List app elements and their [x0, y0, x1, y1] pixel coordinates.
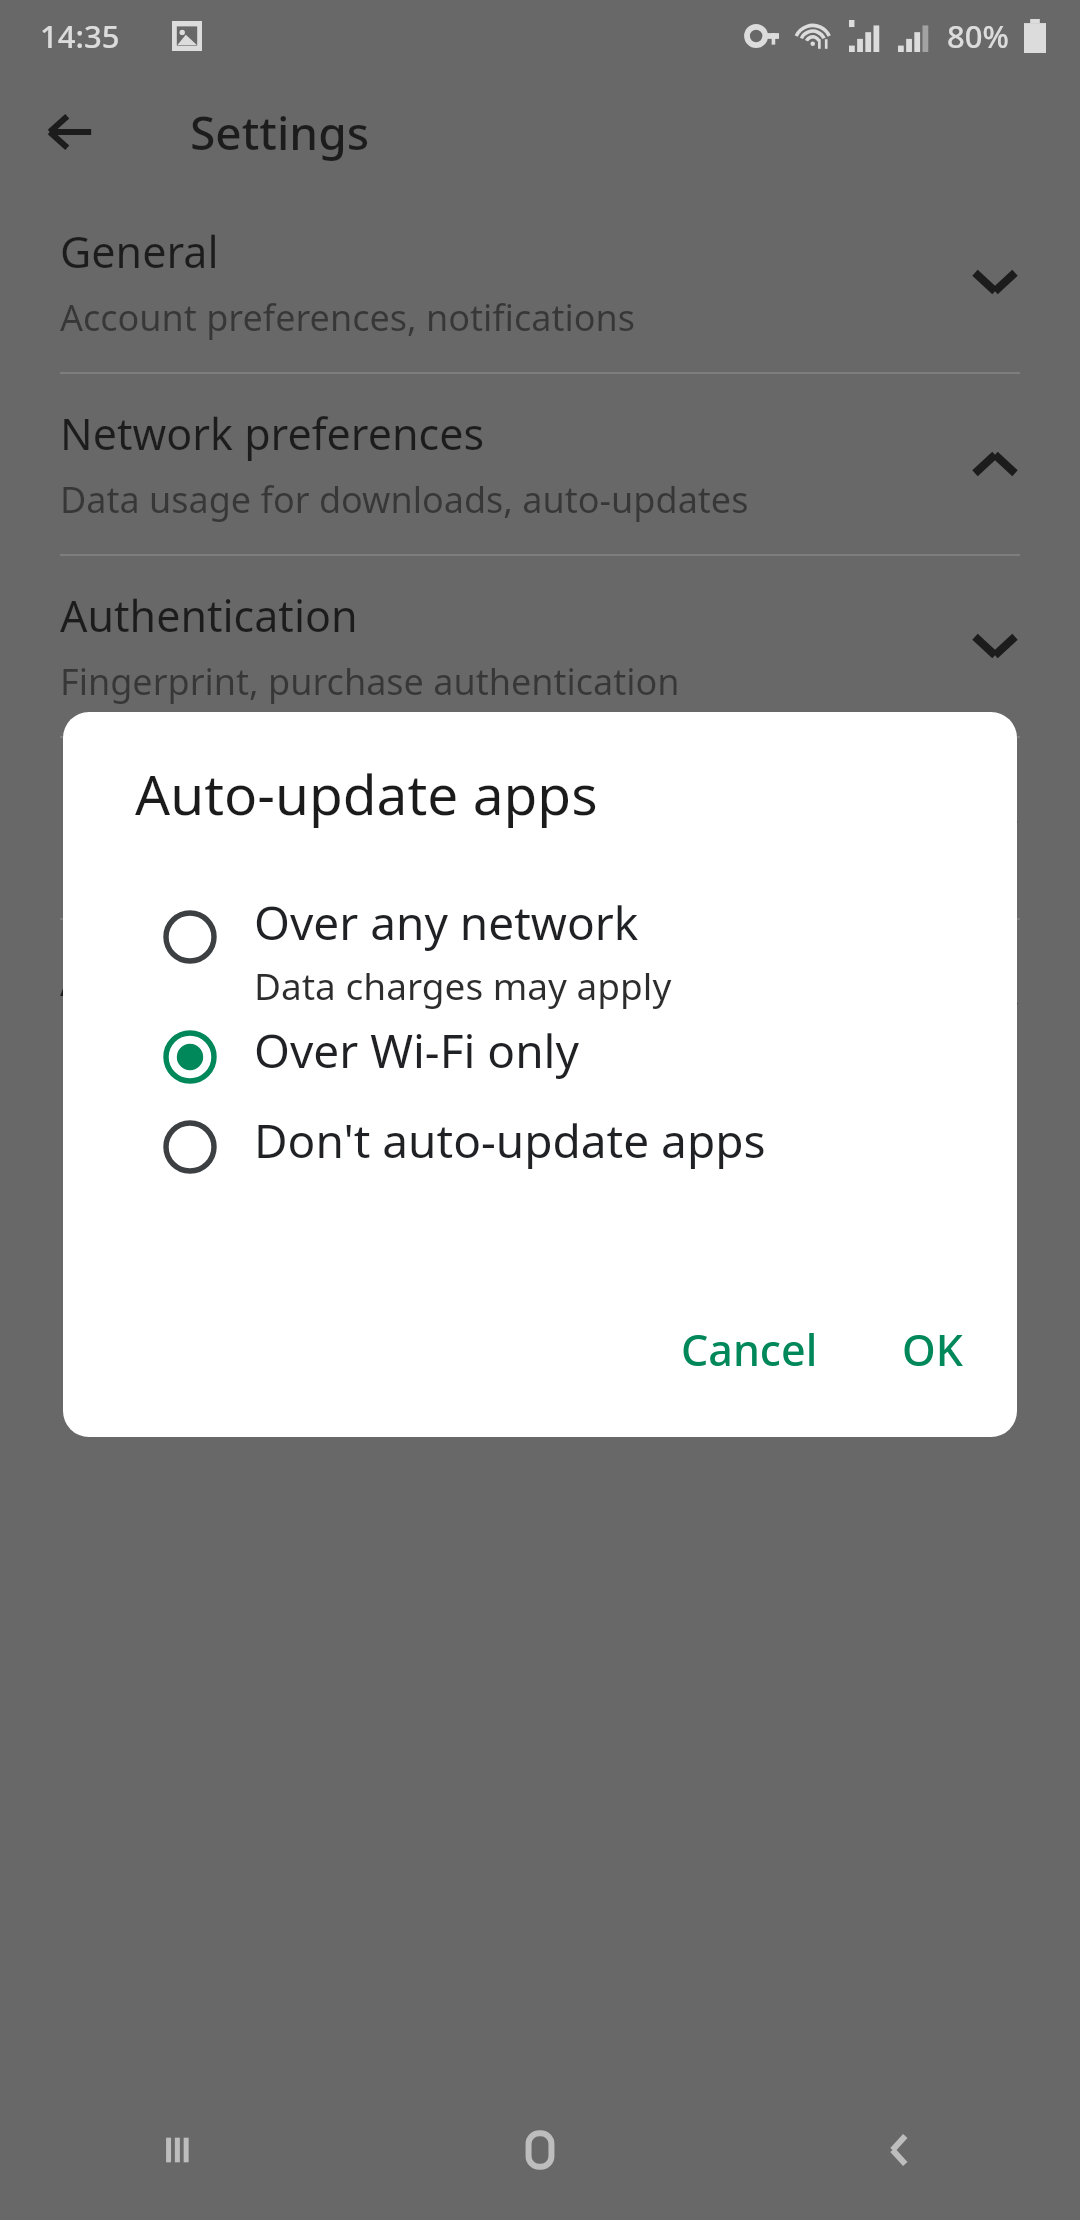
staticText: Settings — [190, 101, 370, 164]
button[interactable]: Back — [720, 2080, 1080, 2220]
staticText: Network preferences — [60, 404, 485, 463]
staticText: Authentication — [60, 586, 358, 645]
staticText: OK — [902, 1320, 963, 1379]
button[interactable]: Recent apps — [0, 2080, 360, 2220]
staticText: Account preferences, notifications — [60, 293, 636, 342]
button[interactable]: Network preferences — [0, 374, 1080, 554]
staticText: Cancel — [681, 1320, 818, 1379]
button[interactable]: Don't auto-update apps — [63, 1109, 1017, 1199]
button[interactable]: Home — [360, 2080, 720, 2220]
staticText: Data usage for downloads, auto-updates — [60, 475, 749, 524]
button[interactable]: Over any network — [63, 891, 1017, 1019]
staticText: About — [60, 950, 183, 1009]
button[interactable]: About — [0, 920, 1080, 1100]
button[interactable]: OK — [878, 1302, 987, 1397]
button[interactable]: Family — [0, 738, 1080, 918]
staticText: Family — [60, 768, 191, 827]
staticText: 80% — [947, 15, 1009, 57]
staticText: Don't auto-update apps — [254, 1109, 766, 1172]
button[interactable]: General — [0, 192, 1080, 372]
staticText: Auto-update apps — [135, 756, 598, 831]
button[interactable]: Cancel — [657, 1302, 842, 1397]
staticText: Over Wi-Fi only — [254, 1019, 579, 1082]
staticText: Fingerprint, purchase authentication — [60, 657, 680, 706]
button[interactable]: Over Wi-Fi only — [63, 1019, 1017, 1109]
button[interactable]: Authentication — [0, 556, 1080, 736]
staticText: Data charges may apply — [254, 960, 672, 1010]
staticText: 14:35 — [40, 15, 120, 57]
staticText: General — [60, 222, 219, 281]
staticText: Play store, build version, device certif… — [60, 1021, 799, 1070]
button[interactable]: Back — [30, 92, 110, 172]
staticText: Over any network — [254, 891, 639, 954]
staticText: Parental control, parent guide — [60, 839, 567, 888]
